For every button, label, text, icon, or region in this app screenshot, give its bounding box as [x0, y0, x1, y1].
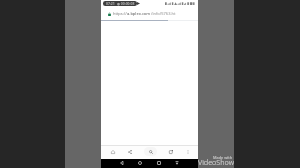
staticText: ● 00:00:08	[117, 1, 135, 6]
button[interactable]: More options	[181, 147, 194, 156]
button[interactable]: Recent apps	[152, 158, 166, 168]
staticText: 07:21	[106, 1, 115, 6]
button[interactable]: Hide keyboard	[170, 158, 184, 168]
button[interactable]: Share	[123, 147, 136, 156]
button[interactable]: Search	[144, 147, 157, 156]
button[interactable]: Home	[133, 158, 147, 168]
staticText: /info/5763.ht	[151, 11, 176, 16]
button[interactable]: Back	[115, 158, 129, 168]
staticText: Made with	[213, 155, 233, 160]
button[interactable]: Tabs	[164, 147, 177, 156]
staticText: a.bplex.com	[127, 11, 151, 16]
staticText: VideoShow	[198, 157, 234, 167]
button[interactable]: Home	[106, 147, 119, 156]
staticText: https://	[113, 11, 127, 16]
